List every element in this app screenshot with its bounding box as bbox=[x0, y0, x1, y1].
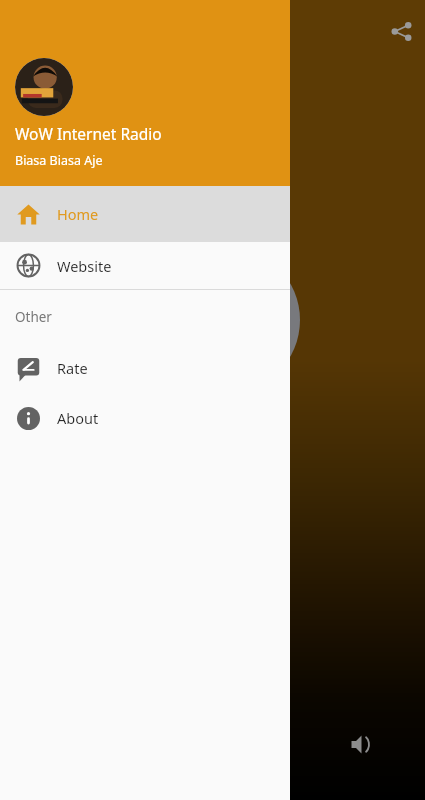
staticText: Home bbox=[57, 204, 99, 224]
staticText: Rate bbox=[57, 358, 88, 378]
button[interactable]: Website bbox=[0, 242, 290, 289]
staticText: Other bbox=[15, 308, 52, 326]
button[interactable]: About bbox=[0, 393, 290, 443]
button[interactable]: Home bbox=[0, 186, 290, 242]
button[interactable]: Volume bbox=[339, 721, 385, 767]
staticText: WoW Internet Radio bbox=[15, 123, 162, 144]
staticText: Website bbox=[57, 256, 112, 276]
button[interactable]: Rate bbox=[0, 343, 290, 393]
button[interactable]: Profile image bbox=[15, 58, 73, 116]
button[interactable]: Share bbox=[378, 8, 424, 54]
staticText: Biasa Biasa Aje bbox=[15, 152, 103, 169]
staticText: About bbox=[57, 408, 99, 428]
